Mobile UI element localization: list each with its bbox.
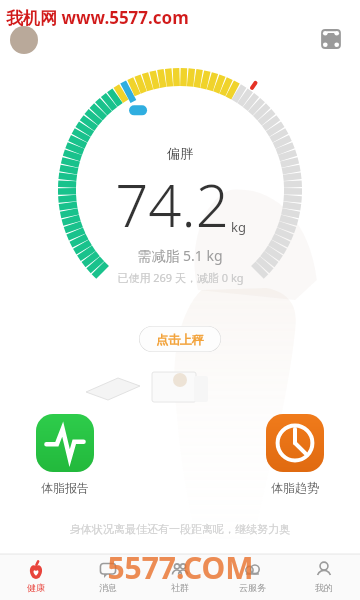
staticText: 体脂趋势 <box>271 480 319 495</box>
button[interactable]: 体脂报告 <box>36 414 94 495</box>
staticText: 健康 <box>27 582 45 593</box>
staticText: 云服务 <box>239 582 266 593</box>
staticText: 我的 <box>315 582 333 593</box>
button[interactable]: 点击上秤 <box>139 326 221 352</box>
button[interactable]: Scale device <box>318 26 344 52</box>
staticText: 体脂报告 <box>41 480 89 495</box>
staticText: 社群 <box>171 582 189 593</box>
button[interactable]: 云服务 <box>216 554 288 600</box>
staticText: 偏胖 <box>167 145 193 161</box>
staticText: 5577.COM <box>107 547 254 588</box>
staticText: 身体状况离最佳还有一段距离呢，继续努力奥 <box>0 522 360 536</box>
button[interactable]: 健康 <box>0 554 72 600</box>
button[interactable]: 体脂趋势 <box>266 414 324 495</box>
button[interactable]: 社群 <box>144 554 216 600</box>
staticText: 消息 <box>99 582 117 593</box>
button[interactable]: Profile <box>10 26 38 54</box>
button[interactable]: 我的 <box>288 554 360 600</box>
staticText: 74.2 <box>115 165 229 244</box>
staticText: kg <box>231 218 246 236</box>
staticText: 已使用 269 天，减脂 0 kg <box>117 270 244 285</box>
staticText: 需减脂 5.1 kg <box>137 246 223 265</box>
staticText: 点击上秤 <box>156 332 204 347</box>
staticText: 我机网 www.5577.com <box>6 6 189 29</box>
button[interactable]: 消息 <box>72 554 144 600</box>
